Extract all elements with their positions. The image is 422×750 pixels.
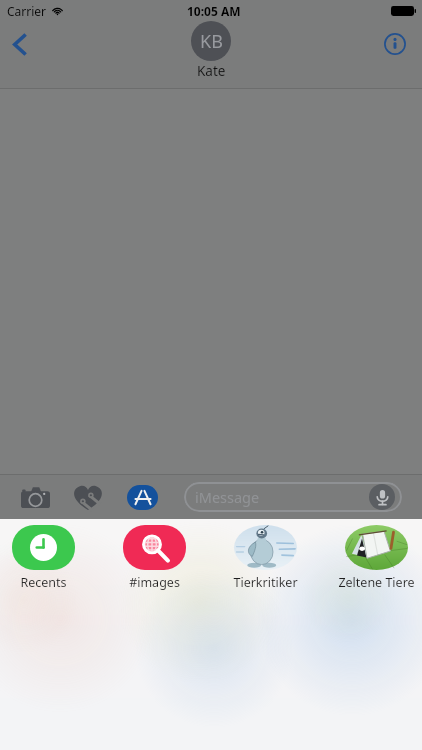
staticText: KB [200, 29, 223, 54]
button[interactable]: #images [99, 525, 210, 591]
button[interactable]: Back [1, 22, 37, 66]
button[interactable]: Zeltene Tiere [321, 525, 422, 591]
staticText: Zeltene Tiere [338, 574, 415, 591]
button[interactable]: Digital Touch [67, 477, 109, 517]
button[interactable]: KB [191, 21, 231, 79]
button[interactable]: Details [378, 22, 412, 66]
button[interactable]: App Store [121, 477, 164, 517]
button[interactable]: Camera [14, 477, 57, 517]
staticText: Kate [197, 62, 226, 80]
button[interactable]: Tierkritiker [210, 525, 321, 591]
button[interactable]: iMessage [184, 482, 402, 512]
staticText: Carrier [7, 3, 47, 19]
staticText: iMessage [195, 487, 260, 507]
staticText: Tierkritiker [233, 574, 298, 591]
button[interactable]: Recents [0, 525, 99, 591]
staticText: 10:05 AM [187, 3, 241, 19]
staticText: Recents [20, 574, 67, 591]
button[interactable]: Dictate [369, 484, 395, 510]
staticText: #images [129, 574, 180, 591]
